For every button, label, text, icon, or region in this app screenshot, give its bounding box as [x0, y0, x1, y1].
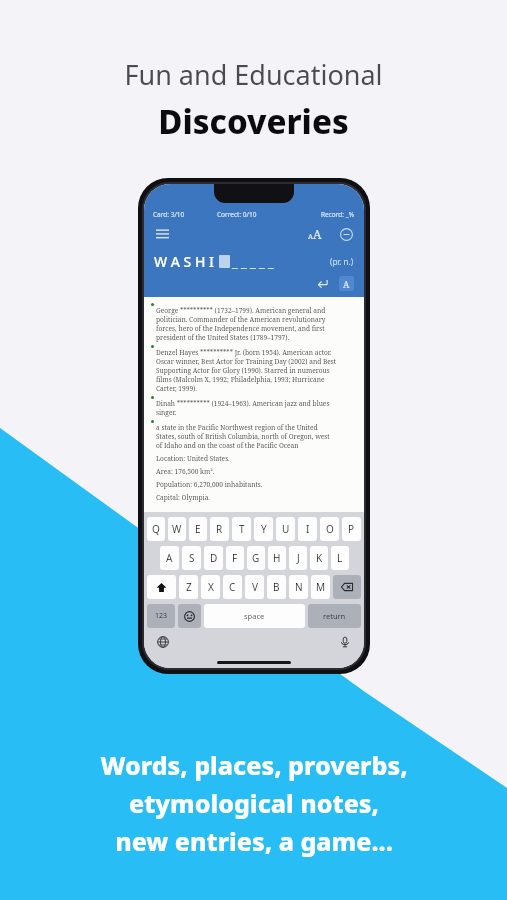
button[interactable]: Y	[254, 517, 273, 541]
staticText: W A S H I	[154, 252, 215, 271]
staticText: Z	[186, 580, 192, 594]
button[interactable]: P	[342, 517, 361, 541]
staticText: politician. Commander of the American re…	[156, 315, 326, 324]
staticText: Denzel Hayes ********** Jr. (born 1954).…	[156, 348, 332, 357]
staticText: Dinah ********** (1924–1963). American j…	[156, 399, 330, 408]
staticText: George ********** (1732–1799). American …	[156, 306, 326, 315]
button[interactable]: Shift	[147, 575, 176, 599]
button[interactable]: X	[201, 575, 220, 599]
staticText: P	[348, 522, 355, 536]
button[interactable]: J	[289, 546, 307, 570]
staticText: F	[232, 551, 238, 565]
staticText: Discoveries	[158, 99, 349, 144]
staticText: I	[306, 522, 310, 536]
button[interactable]: Dictation	[337, 634, 353, 650]
staticText: A	[308, 232, 313, 242]
button[interactable]: L	[331, 546, 349, 570]
staticText: M	[316, 580, 326, 594]
staticText: J	[297, 551, 300, 565]
staticText: Supporting Actor for Glory (1990). Starr…	[156, 366, 330, 375]
button[interactable]: Z	[179, 575, 198, 599]
button[interactable]: Backspace	[333, 575, 361, 599]
staticText: G	[252, 551, 260, 565]
button[interactable]: T	[232, 517, 251, 541]
staticText: of Idaho and on the coast of the Pacific…	[156, 441, 299, 450]
button[interactable]: M	[311, 575, 330, 599]
button[interactable]: I	[298, 517, 317, 541]
button[interactable]: F	[226, 546, 244, 570]
staticText: Capital: Olympia.	[156, 493, 211, 502]
button[interactable]: 123	[147, 604, 175, 628]
staticText: S	[189, 551, 195, 565]
staticText: N	[295, 580, 303, 594]
button[interactable]: V	[245, 575, 264, 599]
staticText: D	[210, 551, 218, 565]
staticText: K	[316, 551, 323, 565]
staticText: (pr. n.)	[330, 256, 354, 267]
staticText: R	[216, 522, 223, 536]
staticText: T	[239, 522, 245, 536]
staticText: Area: 176,500 km².	[156, 467, 215, 476]
staticText: States, south of British Columbia, north…	[156, 432, 330, 441]
button[interactable]: A	[160, 546, 179, 570]
button[interactable]: Q	[147, 517, 165, 541]
staticText: Carter, 1999).	[156, 384, 197, 393]
button[interactable]: C	[223, 575, 242, 599]
staticText: Record: _%	[321, 210, 355, 219]
button[interactable]: G	[247, 546, 265, 570]
button[interactable]: Menu	[153, 225, 171, 243]
staticText: A	[313, 226, 322, 242]
staticText: etymological notes,	[129, 786, 379, 820]
staticText: _ _ _ _ _	[232, 253, 274, 271]
button[interactable]: N	[289, 575, 308, 599]
staticText: E	[195, 522, 201, 536]
button[interactable]: R	[210, 517, 229, 541]
staticText: L	[337, 551, 343, 565]
staticText: A	[166, 551, 173, 565]
staticText: Y	[261, 522, 267, 536]
button[interactable]: Text size	[305, 224, 325, 244]
staticText: Location: United States.	[156, 454, 230, 463]
button[interactable]: S	[182, 546, 201, 570]
button[interactable]: space	[204, 604, 305, 628]
staticText: O	[326, 522, 334, 536]
button[interactable]: H	[268, 546, 286, 570]
staticText: Words, places, proverbs,	[100, 748, 408, 782]
button[interactable]: W	[168, 517, 186, 541]
staticText: Population: 6,270,000 inhabitants.	[156, 480, 263, 489]
staticText: B	[273, 580, 280, 594]
staticText: X	[208, 580, 214, 594]
staticText: 123	[155, 611, 168, 621]
staticText: space	[244, 611, 265, 621]
staticText: return	[323, 611, 346, 621]
button[interactable]: D	[204, 546, 223, 570]
staticText: a state in the Pacific Northwest region …	[156, 423, 318, 432]
staticText: Fun and Educational	[124, 56, 383, 93]
staticText: Oscar winner, Best Actor for Training Da…	[156, 357, 337, 366]
staticText: new entries, a game...	[115, 824, 393, 858]
staticText: singer.	[156, 408, 177, 417]
button[interactable]: O	[320, 517, 339, 541]
staticText: A	[343, 278, 350, 290]
staticText: U	[282, 522, 290, 536]
staticText: Card: 3/10	[153, 210, 217, 219]
staticText: Q	[152, 522, 160, 536]
button[interactable]: U	[276, 517, 295, 541]
staticText: films (Malcolm X, 1992; Philadelphia, 19…	[156, 375, 325, 384]
staticText: W	[172, 522, 182, 536]
button[interactable]: Accent	[339, 276, 354, 291]
button[interactable]: K	[310, 546, 328, 570]
button[interactable]: Change keyboard	[155, 634, 171, 650]
staticText: president of the United States (1789–179…	[156, 333, 290, 342]
staticText: Correct: 0/10	[217, 210, 257, 219]
button[interactable]: Submit	[313, 274, 331, 292]
staticText: H	[273, 551, 281, 565]
button[interactable]: B	[267, 575, 286, 599]
staticText: V	[252, 580, 258, 594]
staticText: forces, hero of the Independence movemen…	[156, 324, 325, 333]
button[interactable]: E	[189, 517, 207, 541]
button[interactable]: Emoji	[178, 604, 201, 628]
button[interactable]: return	[308, 604, 361, 628]
button[interactable]: Hide	[337, 225, 355, 243]
staticText: C	[229, 580, 236, 594]
